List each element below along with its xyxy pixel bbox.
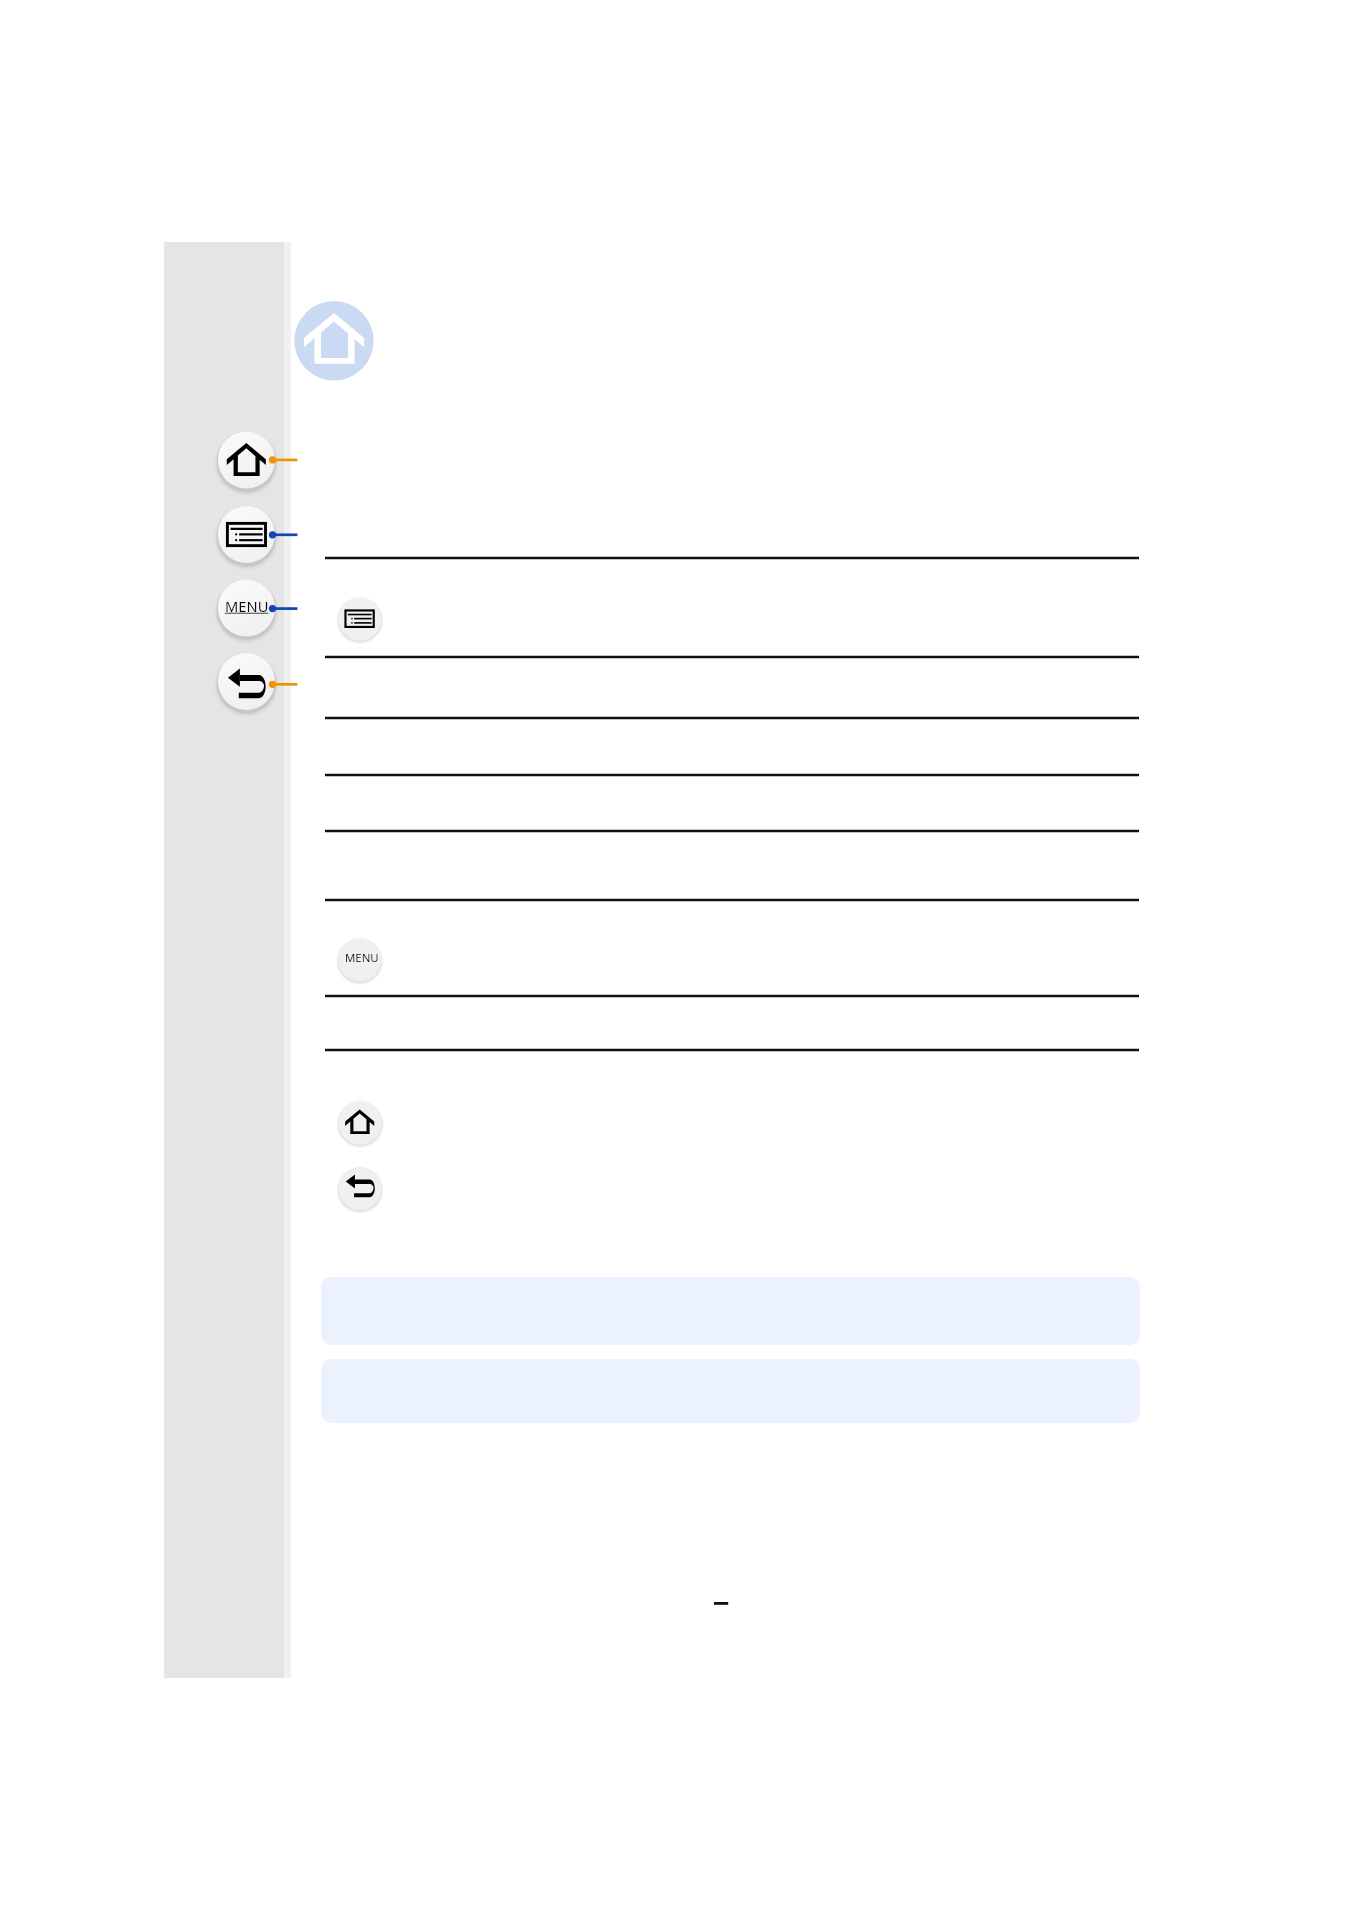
button[interactable]: Home button [212,426,282,496]
button[interactable]: Back button [212,647,282,717]
button[interactable]: Display button [212,500,282,570]
button[interactable]: Home [338,1101,382,1145]
button[interactable]: Display [338,597,382,641]
staticText: MENU [345,950,379,966]
button[interactable]: MENU button [212,574,282,644]
button[interactable]: MENU [338,938,382,982]
staticText: MENU [225,596,269,616]
button[interactable]: Back [338,1167,382,1211]
